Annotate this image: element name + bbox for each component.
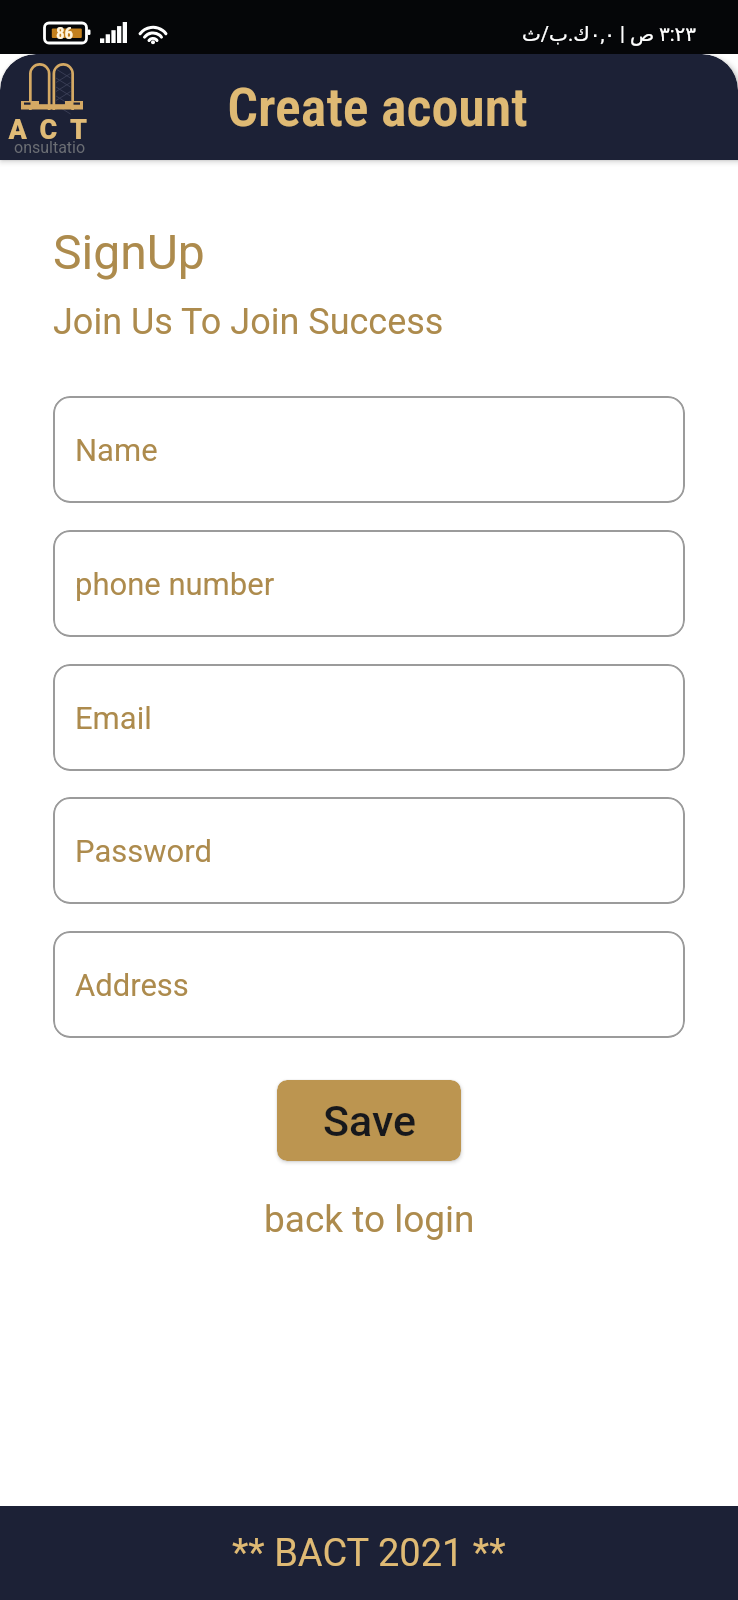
- staticText: 86: [56, 23, 74, 43]
- staticText: Create acount: [227, 76, 528, 139]
- staticText: Address: [75, 967, 189, 1003]
- staticText: back to login: [264, 1198, 475, 1241]
- staticText: BACT: [0, 114, 100, 146]
- staticText: phone number: [75, 566, 275, 602]
- button[interactable]: phone number: [53, 530, 685, 637]
- staticText: Email: [75, 700, 152, 736]
- staticText: Join Us To Join Success: [53, 301, 444, 343]
- button[interactable]: Password: [53, 797, 685, 904]
- staticText: ٣:٢٣ ص | ٠,٠ك.ب/ث: [522, 22, 697, 45]
- other: Wi-Fi: [138, 22, 169, 44]
- button[interactable]: Email: [53, 664, 685, 771]
- other: Mobile signal: [100, 22, 127, 43]
- button[interactable]: Save: [277, 1080, 461, 1161]
- staticText: Name: [75, 432, 158, 468]
- staticText: Password: [75, 833, 212, 869]
- staticText: Save: [323, 1096, 416, 1146]
- staticText: onsultatio: [14, 138, 86, 157]
- staticText: SignUp: [53, 224, 205, 280]
- button[interactable]: Name: [53, 396, 685, 503]
- button[interactable]: Address: [53, 931, 685, 1038]
- other: Battery 86 percent: [44, 22, 92, 44]
- button[interactable]: back to login: [264, 1198, 475, 1241]
- staticText: ** BACT 2021 **: [232, 1531, 506, 1576]
